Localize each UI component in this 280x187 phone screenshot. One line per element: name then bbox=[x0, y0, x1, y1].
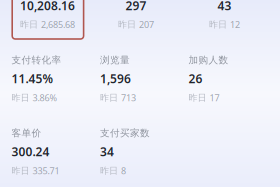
staticText: 浏览量 bbox=[100, 54, 130, 66]
staticText: 昨日 bbox=[209, 19, 227, 30]
staticText: 支付买家数 bbox=[100, 127, 150, 139]
staticText: 昨日 bbox=[100, 165, 118, 176]
staticText: 335.71 bbox=[32, 164, 59, 177]
staticText: 3.86% bbox=[32, 91, 57, 104]
staticText: 17 bbox=[209, 91, 219, 104]
staticText: 34 bbox=[100, 143, 114, 160]
staticText: 客单价 bbox=[11, 127, 41, 139]
staticText: 昨日 bbox=[11, 165, 29, 176]
staticText: 昨日 bbox=[100, 92, 118, 103]
staticText: 8 bbox=[121, 164, 126, 177]
staticText: 297 bbox=[125, 0, 146, 14]
staticText: 713 bbox=[121, 91, 136, 104]
staticText: 2,685.68 bbox=[41, 18, 75, 30]
staticText: 300.24 bbox=[11, 143, 49, 160]
staticText: 10,208.16 bbox=[20, 0, 75, 14]
staticText: 昨日 bbox=[20, 19, 38, 30]
staticText: 207 bbox=[139, 18, 154, 30]
staticText: 支付转化率 bbox=[11, 54, 61, 66]
staticText: 12 bbox=[230, 18, 240, 30]
staticText: 26 bbox=[188, 70, 202, 87]
staticText: 昨日 bbox=[188, 92, 206, 103]
staticText: 加购人数 bbox=[188, 54, 228, 66]
staticText: 11.45% bbox=[11, 70, 53, 87]
staticText: 昨日 bbox=[11, 92, 29, 103]
staticText: 昨日 bbox=[118, 19, 136, 30]
staticText: 43 bbox=[217, 0, 231, 14]
staticText: 1,596 bbox=[100, 70, 131, 87]
